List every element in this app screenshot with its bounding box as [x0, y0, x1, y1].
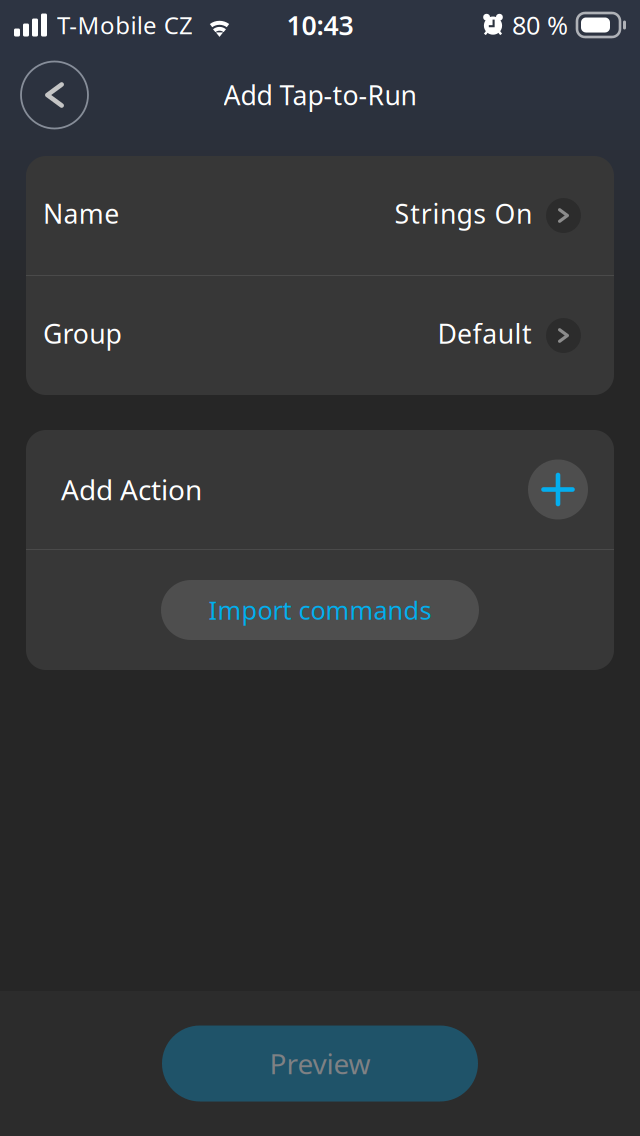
staticText: Name [43, 196, 119, 231]
staticText: Default [437, 316, 532, 351]
staticText: Import commands [208, 593, 431, 627]
button[interactable]: Add Action [26, 430, 614, 549]
staticText: T-Mobile CZ [57, 9, 193, 41]
staticText: Add Action [61, 471, 202, 508]
button[interactable]: Name [26, 156, 614, 275]
button[interactable]: Back [21, 61, 88, 128]
staticText: 10:43 [286, 7, 353, 43]
staticText: Group [43, 316, 122, 351]
button[interactable]: Group [26, 276, 614, 395]
button[interactable]: Preview [162, 1025, 478, 1101]
staticText: Strings On [395, 196, 532, 231]
staticText: Preview [269, 1045, 370, 1082]
staticText: Add Tap-to-Run [223, 77, 416, 113]
button[interactable]: Import commands [161, 580, 479, 640]
staticText: 80 % [512, 8, 568, 42]
